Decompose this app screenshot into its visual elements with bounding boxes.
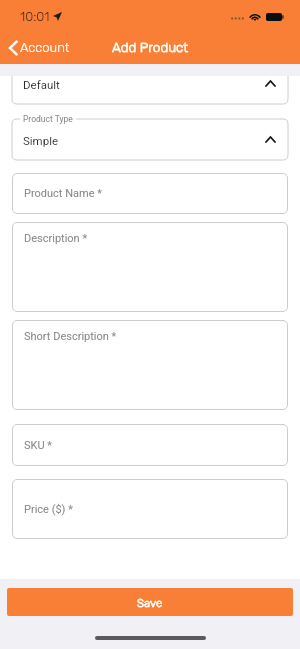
button[interactable]: SKU * [12, 424, 288, 466]
staticText: Description * [24, 232, 88, 245]
button[interactable]: Save [7, 588, 293, 616]
other: Open Product Type [266, 137, 275, 142]
staticText: Add Product [112, 39, 189, 55]
button[interactable]: Product Type [12, 119, 288, 160]
button[interactable]: Account [0, 35, 80, 60]
staticText: Product Name * [24, 187, 102, 200]
staticText: Simple [23, 134, 59, 147]
button[interactable]: Price ($) * [12, 479, 288, 539]
staticText: Default [23, 78, 60, 91]
staticText: Save [137, 596, 163, 610]
other: Open Attribute Set [266, 81, 275, 86]
button[interactable]: Product Name * [12, 173, 288, 214]
staticText: 10:01 [20, 9, 50, 24]
staticText: Price ($) * [24, 503, 73, 516]
staticText: SKU * [24, 439, 53, 452]
button[interactable]: Short Description * [12, 320, 288, 410]
button[interactable]: Attribute Set [12, 76, 288, 104]
staticText: Product Type [23, 114, 73, 124]
button[interactable]: Description * [12, 222, 288, 312]
staticText: Account [20, 40, 70, 55]
staticText: Short Description * [24, 330, 117, 343]
